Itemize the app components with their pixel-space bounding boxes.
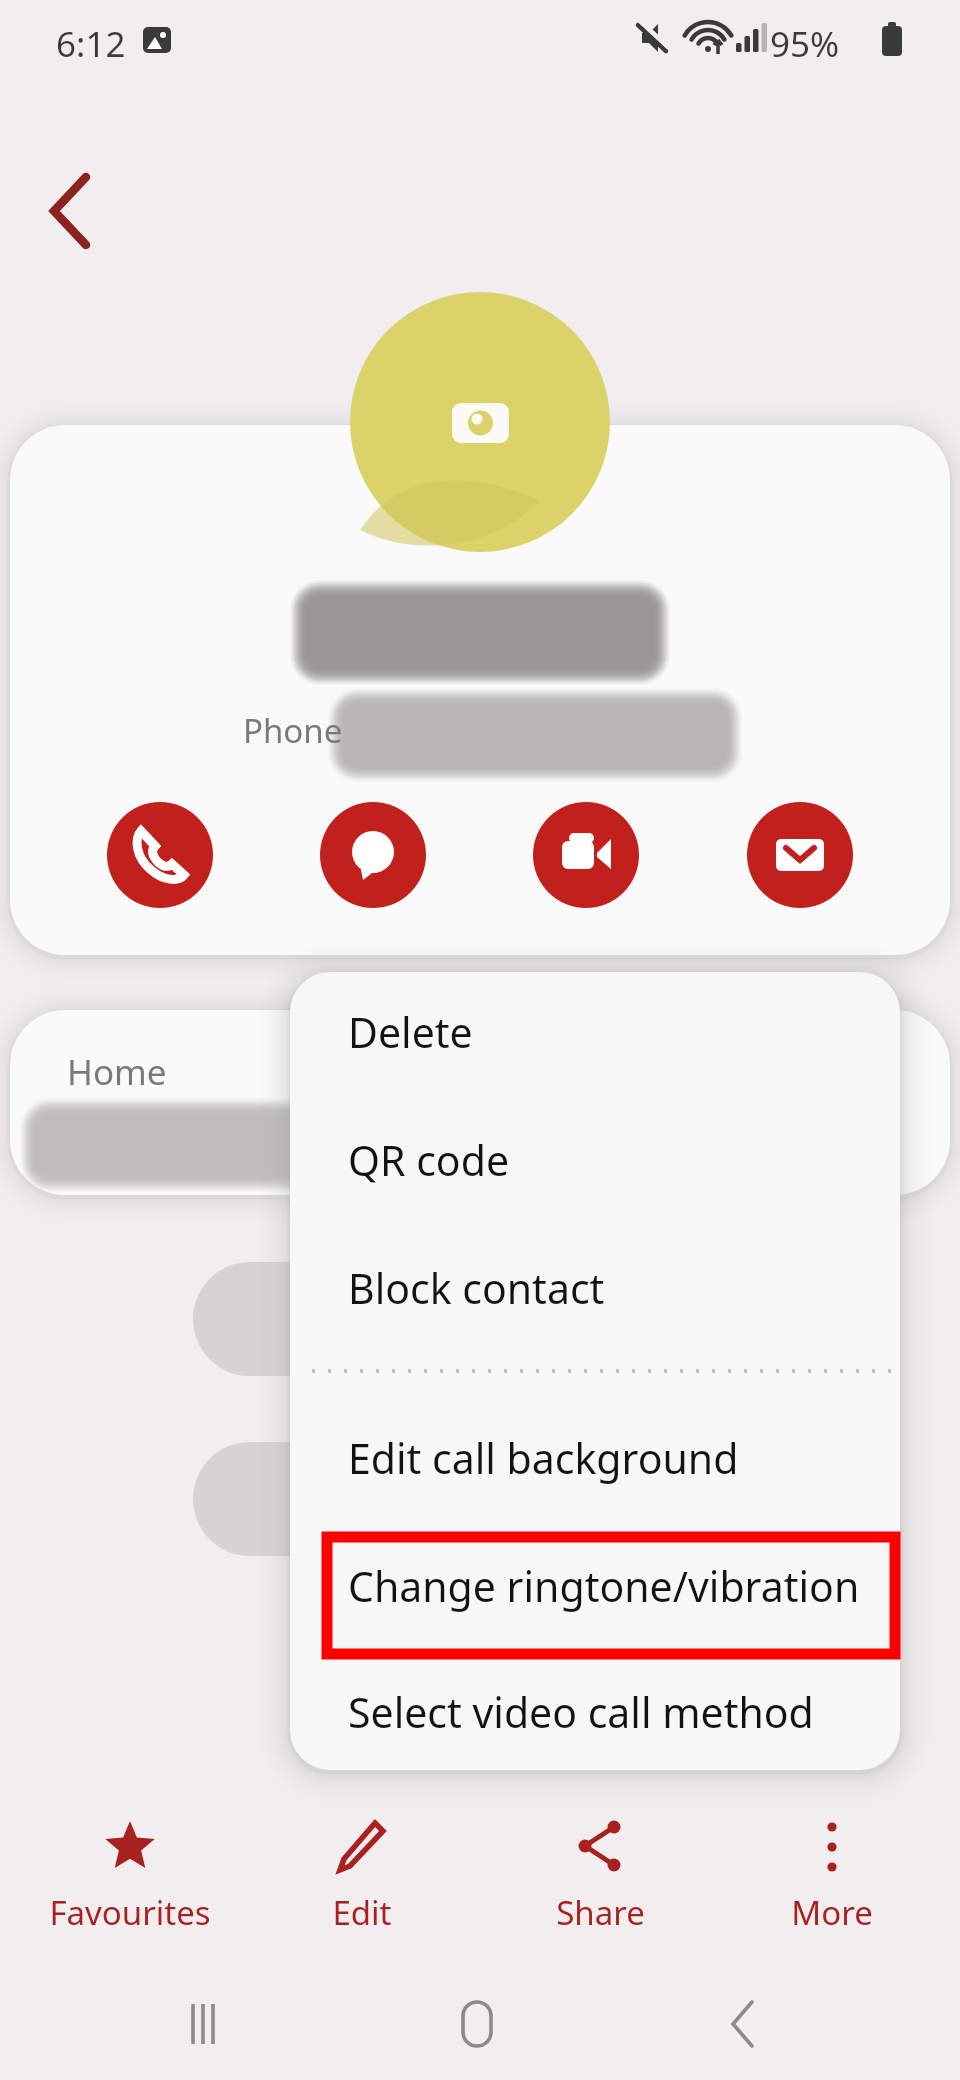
button[interactable]: QR code	[290, 1104, 900, 1216]
button[interactable]: Recents	[165, 1982, 255, 2072]
button[interactable]: Edit call background	[290, 1402, 900, 1514]
staticText: Edit call background	[348, 1430, 739, 1486]
staticText: Block contact	[348, 1260, 605, 1316]
button[interactable]: More	[717, 1818, 947, 1968]
button[interactable]: Select video call method	[290, 1656, 900, 1768]
button[interactable]: Favourites	[15, 1818, 245, 1968]
button[interactable]: Video call	[533, 802, 639, 908]
button[interactable]: Block contact	[290, 1232, 900, 1344]
staticText: 6:12	[56, 20, 126, 68]
staticText: Favourites	[49, 1890, 211, 1935]
button[interactable]: Change ringtone/vibration	[290, 1530, 900, 1642]
staticText: Share	[556, 1890, 645, 1935]
staticText: More	[791, 1890, 873, 1935]
button[interactable]: Back	[700, 1982, 790, 2072]
staticText: Delete	[348, 1004, 473, 1060]
button[interactable]: Edit	[247, 1818, 477, 1968]
button[interactable]: Back	[30, 155, 120, 245]
button[interactable]: Call	[107, 802, 213, 908]
staticText: Change ringtone/vibration	[348, 1558, 860, 1614]
staticText: Select video call method	[348, 1684, 814, 1740]
button[interactable]: Share	[485, 1818, 715, 1968]
staticText: 95%	[770, 20, 840, 68]
staticText: Phone	[243, 708, 343, 753]
button[interactable]: Home	[432, 1982, 522, 2072]
button[interactable]: Delete	[290, 976, 900, 1088]
staticText: QR code	[348, 1132, 510, 1188]
button[interactable]: Message	[320, 802, 426, 908]
button[interactable]: Email	[747, 802, 853, 908]
staticText: Edit	[332, 1890, 392, 1935]
staticText: Home	[67, 1048, 167, 1096]
